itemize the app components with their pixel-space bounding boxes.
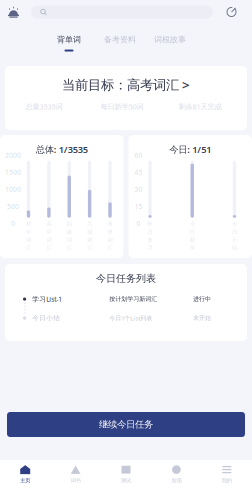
button[interactable]: 词书 — [50, 460, 101, 491]
staticText: 未开始 — [193, 314, 211, 322]
staticText: 汇 — [107, 244, 112, 251]
button[interactable]: Refresh — [224, 0, 239, 23]
staticText: 日 — [190, 229, 195, 235]
staticText: 当前目标：高考词汇 > — [62, 75, 190, 94]
button[interactable]: 主页 — [0, 460, 50, 491]
staticText: 四 — [67, 221, 72, 227]
staticText: 词书 — [71, 477, 81, 484]
button[interactable]: 今日小结 — [5, 315, 247, 322]
staticText: 词 — [87, 236, 92, 243]
staticText: 我的 — [222, 477, 232, 484]
button[interactable]: 词根故事 — [154, 34, 186, 53]
staticText: 总体: 1/3535 — [36, 143, 88, 156]
staticText: 总量3535词 — [25, 102, 62, 112]
staticText: 词 — [26, 236, 31, 243]
staticText: 发现 — [171, 477, 181, 484]
staticText: 级 — [87, 229, 92, 235]
button[interactable]: Menu — [7, 0, 20, 23]
staticText: 词根故事 — [154, 34, 186, 45]
staticText: 习 — [147, 244, 152, 251]
button[interactable]: 备考资料 — [104, 34, 136, 53]
staticText: 今日任务列表 — [96, 272, 156, 285]
button[interactable]: 测试 — [101, 460, 151, 491]
staticText: 每日新学50词 — [100, 102, 143, 112]
staticText: 今 — [190, 221, 195, 227]
staticText: 中 — [46, 229, 51, 235]
button[interactable]: 当前目标：高考词汇 > — [62, 75, 190, 94]
staticText: 初 — [26, 221, 31, 227]
staticText: 30 — [134, 185, 142, 194]
staticText: 汇 — [67, 244, 72, 251]
staticText: 0 — [136, 219, 140, 228]
staticText: 60 — [134, 150, 142, 160]
staticText: 日 — [147, 229, 152, 235]
staticText: 1000 — [5, 185, 21, 194]
staticText: 今日1个List列表 — [109, 314, 152, 322]
staticText: 主页 — [20, 477, 30, 484]
staticText: 1500 — [5, 168, 21, 177]
staticText: 15 — [134, 202, 142, 211]
staticText: 今 — [232, 221, 237, 227]
staticText: 500 — [7, 202, 19, 211]
staticText: 词 — [46, 236, 51, 243]
staticText: 学 — [190, 244, 195, 251]
staticText: 继续今日任务 — [99, 419, 153, 430]
staticText: 研 — [107, 229, 112, 235]
staticText: 45 — [134, 168, 142, 177]
staticText: 结 — [232, 244, 237, 251]
staticText: 按计划学习新词汇 — [109, 295, 157, 303]
staticText: 2000 — [5, 150, 21, 160]
staticText: 剩余81天完成 — [178, 102, 221, 112]
staticText: 备考资料 — [104, 34, 136, 45]
staticText: 今日小结 — [32, 314, 60, 322]
staticText: 复 — [147, 236, 152, 243]
staticText: 测试 — [121, 477, 131, 484]
staticText: 小 — [232, 236, 237, 243]
staticText: 学习List-1 — [32, 295, 62, 304]
staticText: 词 — [107, 236, 112, 243]
staticText: 新 — [190, 236, 195, 243]
staticText: 背单词 — [57, 34, 81, 45]
staticText: 汇 — [46, 244, 51, 251]
staticText: 六 — [87, 221, 92, 227]
staticText: 日 — [232, 229, 237, 235]
button[interactable]: 我的 — [202, 460, 252, 491]
button[interactable]: 背单词 — [57, 34, 81, 60]
staticText: 级 — [67, 229, 72, 235]
staticText: 考 — [107, 221, 112, 227]
staticText: 高 — [46, 221, 51, 227]
staticText: 中 — [26, 229, 31, 235]
staticText: 汇 — [26, 244, 31, 251]
staticText: 进行中 — [193, 295, 211, 303]
staticText: 0 — [11, 219, 15, 228]
button[interactable]: 继续今日任务 — [7, 412, 245, 437]
staticText: 昨 — [147, 221, 152, 227]
staticText: 汇 — [87, 244, 92, 251]
button[interactable]: 发现 — [151, 460, 202, 491]
staticText: 今日: 1/51 — [169, 143, 211, 156]
button[interactable]: 学习List-1 — [5, 296, 247, 303]
staticText: 词 — [67, 236, 72, 243]
button[interactable]: Search — [31, 5, 213, 18]
